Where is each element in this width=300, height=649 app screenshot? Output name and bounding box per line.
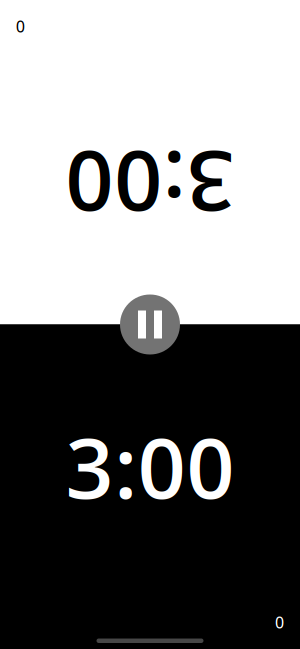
staticText: 3:00 xyxy=(66,85,234,196)
staticText: 0 xyxy=(275,612,284,633)
button[interactable]: Opponent clock, 3:00, 0 moves xyxy=(0,0,300,324)
button[interactable]: Your clock, 3:00, 0 moves xyxy=(0,324,300,649)
staticText: 3:00 xyxy=(66,410,234,522)
button[interactable]: Pause xyxy=(120,294,180,354)
